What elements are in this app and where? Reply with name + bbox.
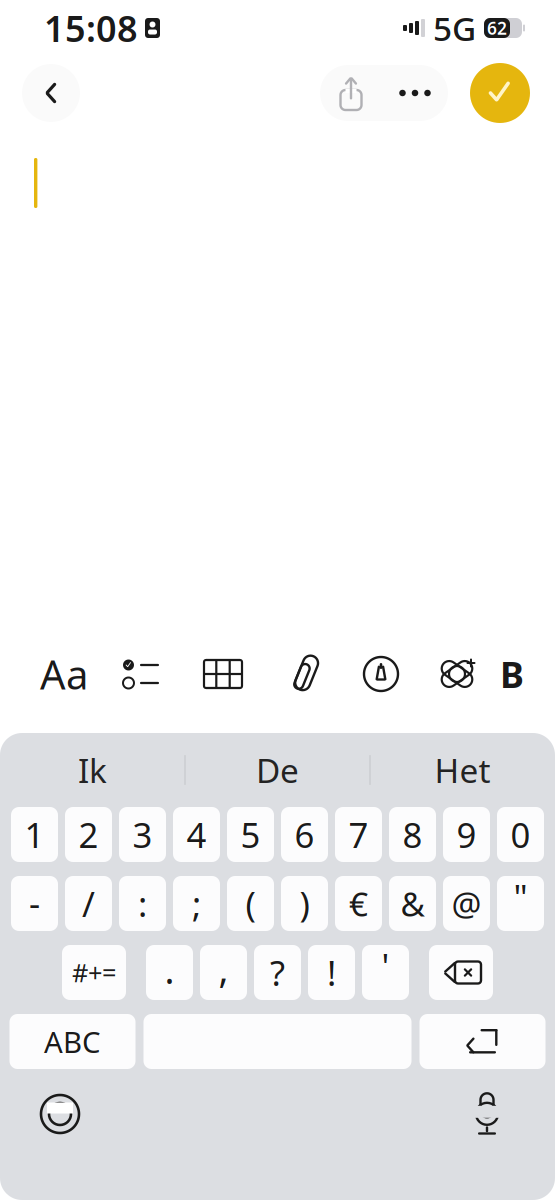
staticText: ABC	[44, 1022, 101, 1061]
staticText: ;	[192, 880, 201, 926]
button[interactable]: Checklist	[101, 643, 181, 705]
button[interactable]: ;	[173, 876, 220, 931]
staticText: Ik	[78, 748, 107, 792]
staticText: ?	[270, 949, 285, 995]
button[interactable]: Ik	[0, 743, 184, 797]
staticText: 5	[240, 811, 260, 857]
button[interactable]: ABC	[9, 1014, 135, 1069]
button[interactable]: Markup	[343, 643, 419, 705]
staticText: 3	[132, 811, 152, 857]
button[interactable]: ,	[200, 945, 247, 1000]
button[interactable]: Return	[419, 1014, 545, 1069]
staticText: '	[381, 942, 389, 988]
button[interactable]: .	[146, 945, 193, 1000]
button[interactable]: 0	[497, 807, 544, 862]
staticText: Het	[434, 748, 490, 792]
button[interactable]: 8	[389, 807, 436, 862]
button[interactable]: ?	[254, 945, 301, 1000]
staticText: /	[82, 880, 95, 926]
button[interactable]: Done	[470, 63, 530, 123]
staticText: ,	[218, 944, 228, 993]
button[interactable]: )	[281, 876, 328, 931]
button[interactable]: @	[443, 876, 490, 931]
staticText: &	[400, 881, 424, 926]
staticText: #+=	[72, 956, 116, 989]
button[interactable]: Het	[370, 743, 554, 797]
staticText: "	[513, 873, 527, 919]
button[interactable]: 5	[227, 807, 274, 862]
button[interactable]: Emoji	[30, 1085, 90, 1143]
button[interactable]: Table	[181, 643, 265, 705]
button[interactable]: -	[11, 876, 58, 931]
button[interactable]: Bold	[495, 643, 529, 705]
staticText: 9	[456, 811, 476, 857]
button[interactable]: !	[308, 945, 355, 1000]
staticText: :	[138, 880, 147, 926]
staticText: 5G	[433, 6, 476, 50]
staticText: .	[164, 945, 174, 994]
button[interactable]: 3	[119, 807, 166, 862]
staticText: @	[451, 881, 481, 926]
staticText: De	[256, 748, 299, 792]
staticText: 6	[294, 811, 314, 857]
button[interactable]: More options	[382, 65, 448, 121]
staticText: B	[500, 650, 524, 698]
button[interactable]: '	[362, 945, 409, 1000]
staticText: 62	[487, 16, 507, 39]
button[interactable]: &	[389, 876, 436, 931]
staticText: -	[29, 879, 40, 925]
staticText: )	[299, 880, 309, 926]
button[interactable]: Dictate	[457, 1085, 517, 1143]
staticText: 8	[402, 811, 422, 857]
button[interactable]: #+=	[62, 945, 126, 1000]
button[interactable]: 7	[335, 807, 382, 862]
staticText: Aa	[40, 647, 88, 700]
button[interactable]: "	[497, 876, 544, 931]
button[interactable]: 2	[65, 807, 112, 862]
button[interactable]: 9	[443, 807, 490, 862]
button[interactable]: :	[119, 876, 166, 931]
button[interactable]: Share	[320, 65, 382, 121]
staticText: (	[245, 880, 255, 926]
button[interactable]: 6	[281, 807, 328, 862]
staticText: !	[327, 949, 336, 995]
staticText: 1	[24, 811, 44, 857]
button[interactable]: Back	[22, 64, 80, 122]
staticText: 2	[78, 811, 98, 857]
button[interactable]: Text format	[27, 643, 101, 705]
button[interactable]: Attach file	[265, 643, 343, 705]
button[interactable]: (	[227, 876, 274, 931]
button[interactable]: De	[185, 743, 369, 797]
button[interactable]: 4	[173, 807, 220, 862]
button[interactable]: Writing tools	[419, 643, 495, 705]
button[interactable]: €	[335, 876, 382, 931]
button[interactable]: /	[65, 876, 112, 931]
button[interactable]: 1	[11, 807, 58, 862]
staticText: 7	[348, 811, 368, 857]
staticText: 15:08	[44, 4, 138, 52]
staticText: €	[349, 881, 368, 926]
button[interactable]: Delete	[429, 945, 493, 1000]
staticText: 0	[510, 811, 530, 857]
staticText: 4	[186, 811, 206, 857]
